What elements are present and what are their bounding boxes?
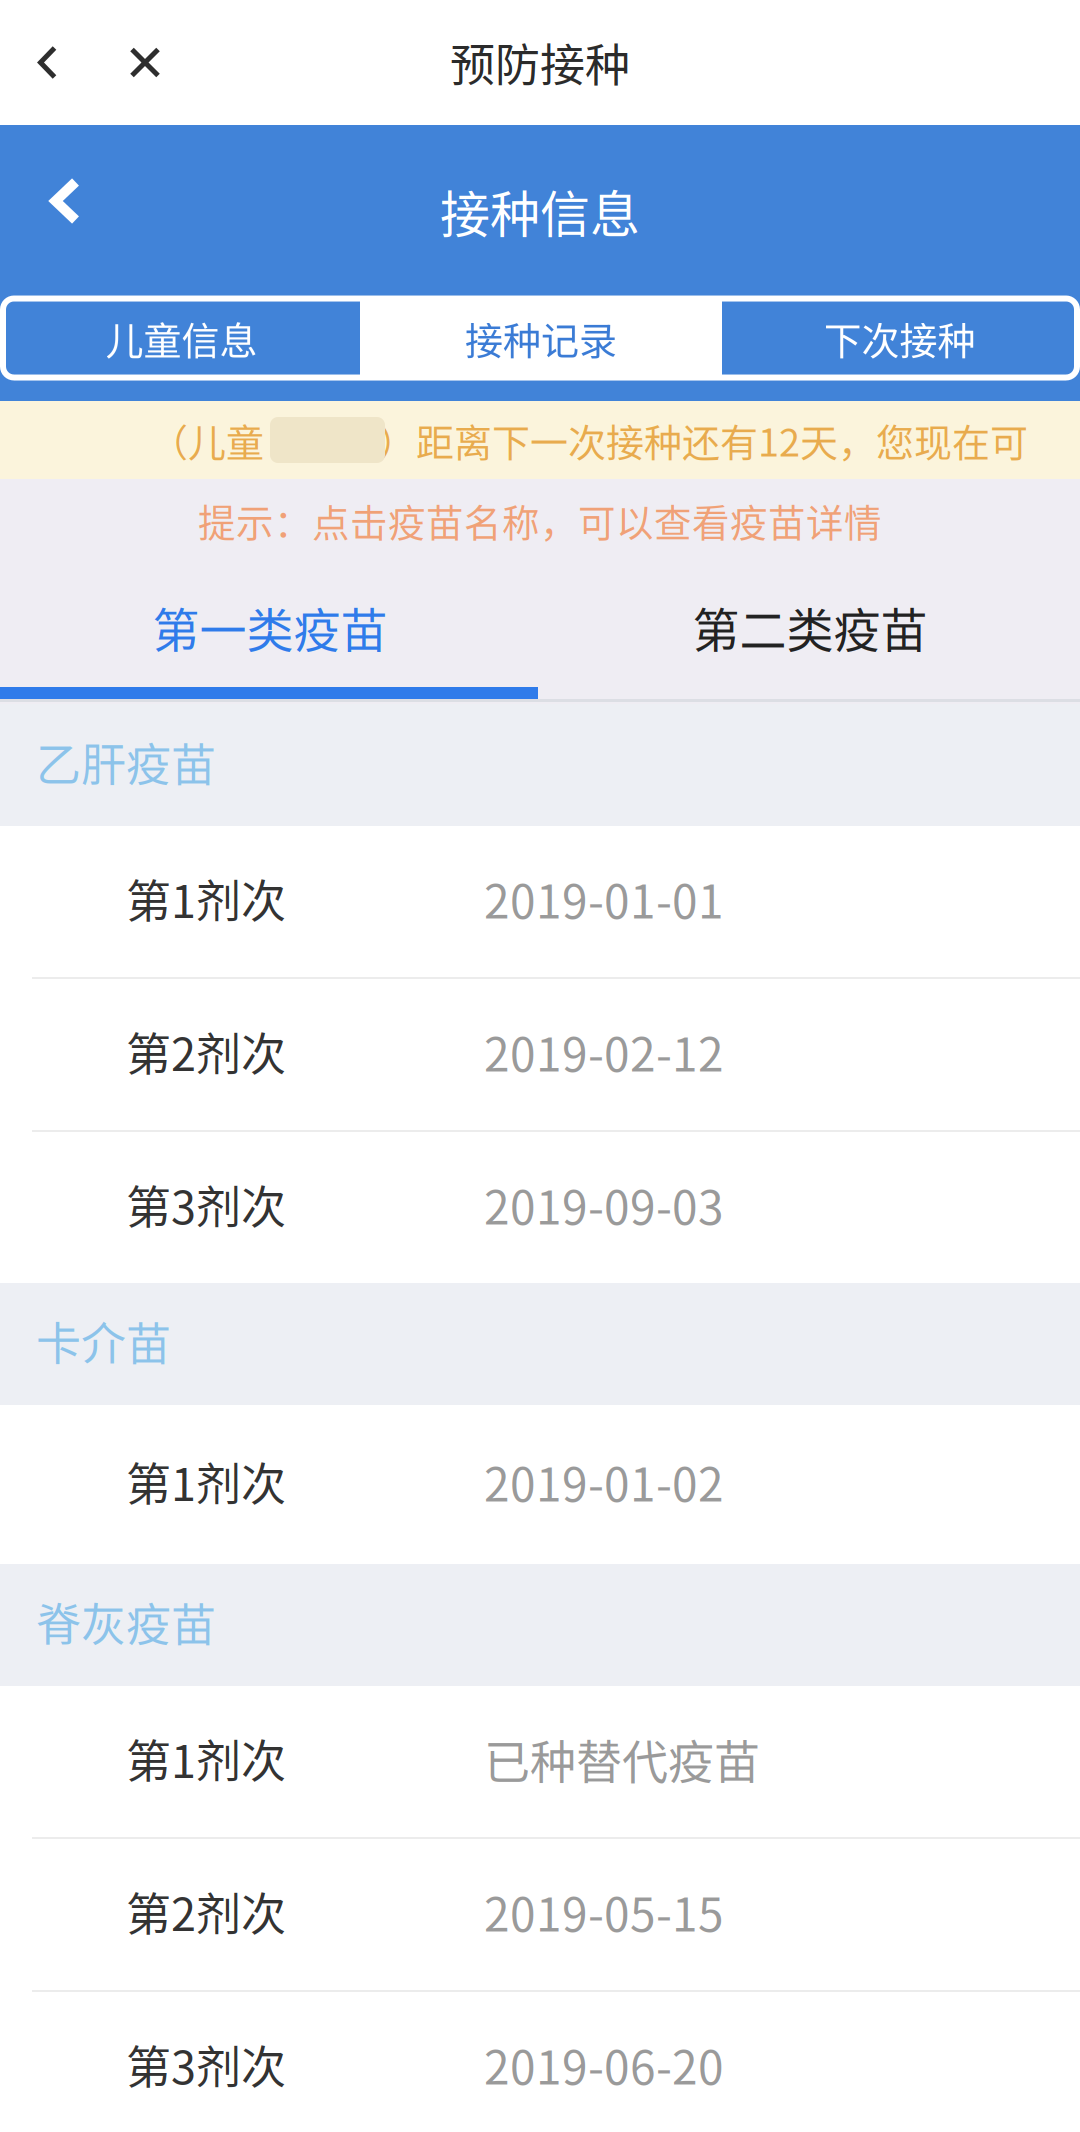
button[interactable]: 第二类疫苗 — [540, 592, 1080, 687]
staticText: 2019-01-01 — [484, 865, 724, 932]
button[interactable]: 接种记录 — [360, 298, 722, 377]
staticText: 下次接种 — [823, 310, 975, 365]
staticText: 提示：点击疫苗名称，可以查看疫苗详情 — [198, 493, 882, 548]
staticText: 预防接种 — [450, 30, 630, 95]
staticText: 第2剂次 — [126, 1019, 286, 1084]
button[interactable]: 卡介苗 — [0, 1283, 1080, 1405]
staticText: 第1剂次 — [126, 866, 286, 931]
button[interactable]: 第3剂次 — [0, 1132, 1080, 1283]
button[interactable]: 第一类疫苗 — [0, 592, 540, 687]
staticText: 第二类疫苗 — [692, 593, 927, 661]
button[interactable]: 乙肝疫苗 — [0, 704, 1080, 826]
staticText: 第一类疫苗 — [152, 593, 387, 661]
button[interactable]: 脊灰疫苗 — [0, 1564, 1080, 1686]
staticText: 卡介苗 — [36, 1308, 171, 1374]
staticText: 2019-06-20 — [484, 2031, 724, 2098]
staticText: 2019-01-02 — [484, 1448, 724, 1515]
staticText: 儿童信息 — [105, 310, 257, 365]
staticText: 第1剂次 — [126, 1726, 286, 1791]
staticText: （儿童 ）距离下一次接种还有12天，您现在可 — [150, 412, 1028, 467]
button[interactable]: 关闭 — [95, 0, 195, 125]
button[interactable]: 第3剂次 — [0, 1992, 1080, 2132]
staticText: 第2剂次 — [126, 1879, 286, 1944]
staticText: 接种记录 — [465, 310, 617, 365]
button[interactable]: 第1剂次 — [0, 826, 1080, 977]
button[interactable]: 第2剂次 — [0, 979, 1080, 1130]
staticText: 已种替代疫苗 — [484, 1725, 760, 1792]
button[interactable]: 下次接种 — [722, 298, 1077, 377]
staticText: 第3剂次 — [126, 1172, 286, 1237]
staticText: 接种信息 — [440, 175, 640, 247]
button[interactable]: 返回 — [0, 123, 131, 298]
button[interactable]: 儿童信息 — [3, 298, 360, 377]
button[interactable]: 第1剂次 — [0, 1405, 1080, 1564]
staticText: 乙肝疫苗 — [36, 729, 216, 795]
staticText: 脊灰疫苗 — [36, 1589, 216, 1655]
staticText: 2019-02-12 — [484, 1018, 724, 1085]
staticText: 第1剂次 — [126, 1449, 286, 1514]
staticText: 2019-09-03 — [484, 1171, 724, 1238]
button[interactable]: 返回 — [0, 0, 95, 125]
button[interactable]: 第1剂次 — [0, 1686, 1080, 1837]
button[interactable]: 第2剂次 — [0, 1839, 1080, 1990]
staticText: 2019-05-15 — [484, 1878, 724, 1945]
staticText: 第3剂次 — [126, 2032, 286, 2097]
